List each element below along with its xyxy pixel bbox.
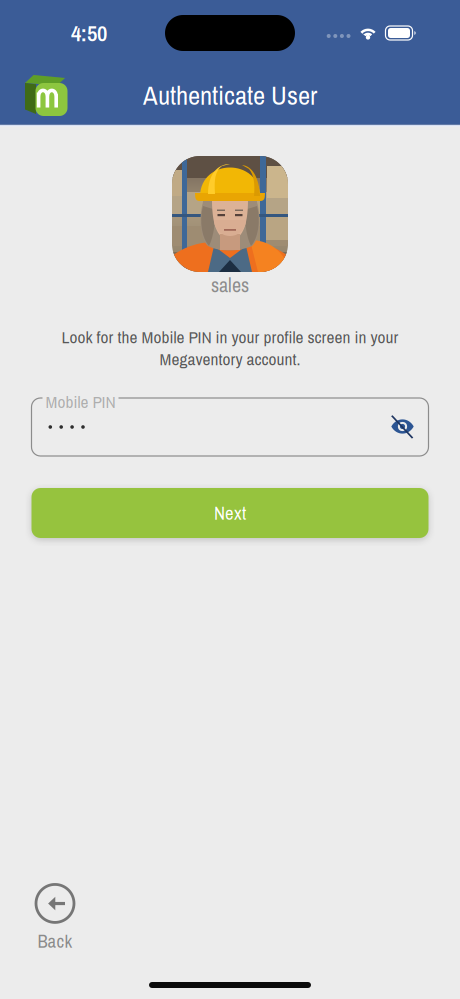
staticText: sales	[211, 271, 249, 298]
staticText: Authenticate User	[143, 77, 317, 113]
staticText: Back	[37, 928, 72, 953]
staticText: Look for the Mobile PIN in your profile …	[61, 325, 398, 349]
button[interactable]: Next	[31, 488, 428, 538]
staticText: Next	[214, 500, 246, 525]
staticText: 4:50	[71, 18, 107, 48]
staticText: Megaventory account.	[159, 347, 300, 371]
button[interactable]: Show PIN	[390, 399, 428, 455]
button[interactable]: Back	[17, 884, 93, 953]
button[interactable]: Megaventory	[0, 65, 68, 125]
staticText: Mobile PIN	[45, 390, 115, 413]
